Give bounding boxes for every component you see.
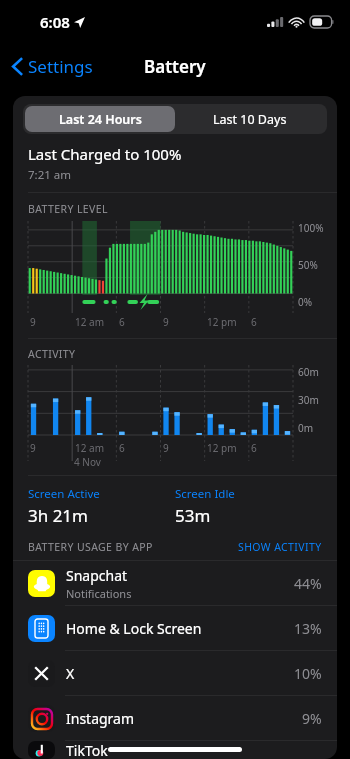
- staticText: 6: [251, 315, 257, 329]
- staticText: 6: [119, 441, 125, 455]
- staticText: 12 pm: [207, 315, 237, 329]
- staticText: BATTERY LEVEL: [28, 202, 108, 216]
- button[interactable]: Settings: [8, 49, 97, 84]
- staticText: 7:21 am: [28, 167, 72, 183]
- staticText: Screen Active: [28, 486, 100, 502]
- staticText: 44%: [294, 574, 322, 593]
- staticText: 0%: [298, 295, 313, 309]
- staticText: 3h 21m: [28, 504, 88, 527]
- staticText: Notifications: [66, 586, 132, 601]
- staticText: 100%: [298, 221, 324, 235]
- staticText: 60m: [298, 365, 319, 379]
- staticText: 9%: [302, 709, 322, 728]
- staticText: 13%: [294, 619, 322, 638]
- button[interactable]: Snapchat: [13, 561, 337, 605]
- staticText: 6: [251, 441, 257, 455]
- other: Home: [108, 747, 242, 752]
- staticText: ACTIVITY: [28, 347, 76, 361]
- staticText: 6: [119, 315, 125, 329]
- staticText: Last Charged to 100%: [28, 144, 182, 164]
- staticText: Screen Idle: [175, 486, 235, 502]
- staticText: BATTERY USAGE BY APP: [28, 540, 238, 554]
- button[interactable]: Home & Lock Screen: [13, 606, 337, 650]
- button[interactable]: Last 24 Hours: [25, 106, 175, 132]
- staticText: 12 am: [75, 441, 104, 455]
- staticText: Battery: [144, 55, 206, 78]
- button[interactable]: Last 10 Days: [175, 106, 325, 132]
- staticText: 9: [30, 315, 36, 329]
- staticText: Instagram: [66, 709, 135, 728]
- button[interactable]: SHOW ACTIVITY: [238, 540, 322, 554]
- staticText: Home & Lock Screen: [66, 619, 202, 638]
- staticText: 10%: [294, 664, 322, 683]
- staticText: 30m: [298, 393, 319, 407]
- staticText: Settings: [28, 55, 93, 78]
- staticText: 0m: [298, 421, 314, 435]
- staticText: 12 am: [75, 315, 104, 329]
- button[interactable]: X: [13, 651, 337, 695]
- staticText: 9: [163, 315, 169, 329]
- staticText: 4 Nov: [74, 455, 101, 469]
- staticText: 12 pm: [207, 441, 237, 455]
- staticText: Last 24 Hours: [59, 111, 142, 128]
- button[interactable]: TikTok: [13, 741, 337, 759]
- staticText: X: [66, 664, 75, 683]
- staticText: 53m: [175, 504, 211, 527]
- staticText: 9: [30, 441, 36, 455]
- staticText: 6:08: [40, 12, 70, 32]
- staticText: 9: [163, 441, 169, 455]
- staticText: Snapchat: [66, 566, 128, 585]
- button[interactable]: Instagram: [13, 696, 337, 740]
- staticText: 50%: [298, 258, 318, 272]
- staticText: SHOW ACTIVITY: [238, 540, 322, 554]
- staticText: Last 10 Days: [213, 111, 287, 128]
- staticText: TikTok: [66, 741, 108, 759]
